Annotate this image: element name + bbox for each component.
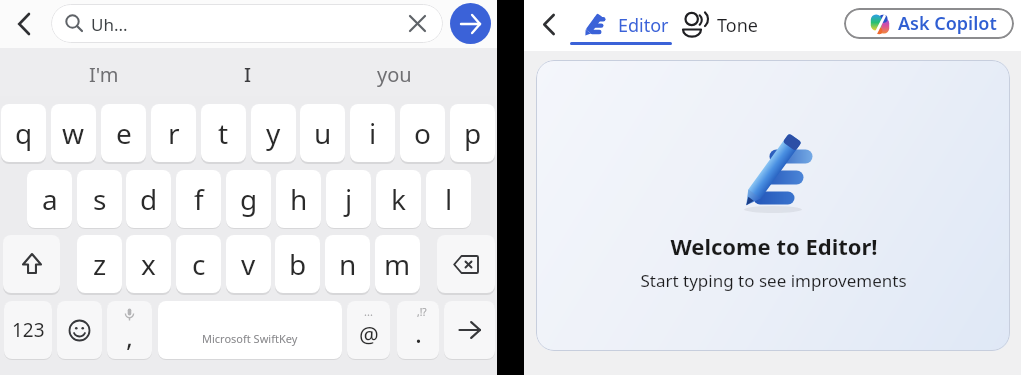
- staticText: d: [140, 180, 158, 218]
- staticText: 123: [12, 317, 45, 343]
- button[interactable]: v: [226, 235, 271, 293]
- button[interactable]: 123: [4, 301, 52, 359]
- staticText: u: [314, 114, 332, 152]
- staticText: ,!?: [417, 305, 427, 319]
- button[interactable]: h: [276, 170, 321, 228]
- staticText: o: [414, 114, 431, 152]
- button[interactable]: p: [450, 104, 495, 162]
- button[interactable]: s: [77, 170, 122, 228]
- button[interactable]: [410, 16, 425, 31]
- staticText: e: [116, 114, 132, 152]
- button[interactable]: j: [326, 170, 371, 228]
- button[interactable]: l: [426, 170, 471, 228]
- staticText: Editor: [618, 13, 669, 38]
- button[interactable]: o: [400, 104, 445, 162]
- staticText: w: [62, 114, 85, 152]
- staticText: Tone: [717, 13, 758, 38]
- staticText: p: [464, 114, 482, 152]
- button[interactable]: Uh...: [51, 4, 443, 43]
- staticText: I: [244, 61, 252, 88]
- button[interactable]: c: [176, 235, 221, 293]
- button[interactable]: x: [126, 235, 171, 293]
- staticText: z: [93, 245, 107, 283]
- button[interactable]: n: [325, 235, 370, 293]
- button[interactable]: b: [275, 235, 320, 293]
- button[interactable]: ,: [107, 301, 152, 359]
- button[interactable]: [444, 301, 495, 359]
- button[interactable]: k: [376, 170, 421, 228]
- staticText: Start typing to see improvements: [640, 269, 907, 292]
- staticText: Ask Copilot: [898, 11, 997, 36]
- button[interactable]: I: [188, 50, 308, 98]
- staticText: j: [345, 180, 353, 218]
- staticText: i: [369, 114, 377, 152]
- button[interactable]: d: [126, 170, 171, 228]
- button[interactable]: Editor: [570, 0, 672, 51]
- staticText: h: [290, 180, 308, 218]
- button[interactable]: [450, 3, 491, 44]
- staticText: g: [240, 180, 258, 218]
- staticText: Welcome to Editor!: [670, 231, 878, 261]
- button[interactable]: f: [176, 170, 221, 228]
- staticText: I'm: [89, 61, 119, 88]
- staticText: c: [192, 245, 206, 283]
- staticText: t: [218, 114, 229, 152]
- button[interactable]: a: [27, 170, 72, 228]
- button[interactable]: [16, 14, 34, 34]
- button[interactable]: z: [77, 235, 122, 293]
- button[interactable]: i: [350, 104, 395, 162]
- staticText: .: [415, 315, 422, 350]
- button[interactable]: ...: [347, 301, 390, 359]
- staticText: x: [141, 245, 156, 283]
- staticText: q: [15, 114, 33, 152]
- button[interactable]: [57, 301, 102, 359]
- button[interactable]: t: [201, 104, 246, 162]
- button[interactable]: Tone: [676, 0, 772, 51]
- button[interactable]: I'm: [44, 50, 164, 98]
- staticText: m: [384, 245, 411, 283]
- staticText: you: [377, 61, 412, 88]
- button[interactable]: w: [51, 104, 96, 162]
- button[interactable]: q: [1, 104, 46, 162]
- button[interactable]: u: [300, 104, 345, 162]
- staticText: Microsoft SwiftKey: [202, 331, 298, 346]
- button[interactable]: g: [226, 170, 271, 228]
- staticText: f: [194, 180, 204, 218]
- staticText: @: [359, 319, 379, 349]
- staticText: v: [241, 245, 256, 283]
- staticText: ...: [364, 304, 373, 319]
- staticText: k: [391, 180, 406, 218]
- staticText: Uh...: [91, 13, 128, 36]
- button[interactable]: [437, 235, 495, 293]
- button[interactable]: [543, 15, 556, 34]
- staticText: b: [289, 245, 307, 283]
- staticText: n: [339, 245, 357, 283]
- button[interactable]: ,!?: [397, 301, 439, 359]
- staticText: l: [445, 180, 453, 218]
- button[interactable]: Ask Copilot: [844, 8, 1014, 39]
- staticText: ,: [126, 319, 133, 354]
- button[interactable]: m: [375, 235, 420, 293]
- staticText: s: [93, 180, 107, 218]
- button[interactable]: r: [151, 104, 196, 162]
- button[interactable]: you: [334, 50, 454, 98]
- staticText: r: [168, 114, 180, 152]
- staticText: y: [266, 114, 281, 152]
- button[interactable]: Microsoft SwiftKey: [158, 301, 342, 359]
- button[interactable]: y: [251, 104, 296, 162]
- staticText: a: [42, 180, 58, 218]
- button[interactable]: e: [101, 104, 146, 162]
- button[interactable]: [3, 235, 60, 293]
